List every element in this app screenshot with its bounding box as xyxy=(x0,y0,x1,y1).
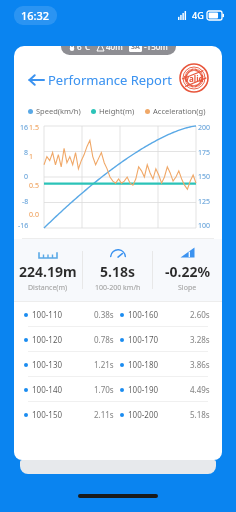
staticText: 100-180 xyxy=(128,359,159,370)
staticText: -0.22% xyxy=(165,262,211,281)
staticText: 4.49s xyxy=(190,384,210,395)
staticText: 100-120 xyxy=(32,334,63,345)
staticText: 200 xyxy=(198,123,211,133)
staticText: Slope xyxy=(178,283,197,293)
staticText: 2.60s xyxy=(190,309,210,320)
staticText: Height(m) xyxy=(99,106,135,116)
staticText: 125 xyxy=(198,197,211,207)
staticText: 1 xyxy=(29,152,34,162)
staticText: 100-190 xyxy=(128,384,159,395)
button[interactable]: Back xyxy=(22,66,50,94)
staticText: 0.0 xyxy=(29,210,39,220)
staticText: 1.70s xyxy=(94,384,114,395)
staticText: 1.21s xyxy=(94,359,114,370)
staticText: 0.78s xyxy=(94,334,114,345)
button[interactable]: 100-150 xyxy=(14,402,222,426)
button[interactable]: 5.18s xyxy=(83,243,152,297)
staticText: 100-110 xyxy=(32,309,63,320)
staticText: 100-170 xyxy=(128,334,159,345)
staticText: 5.18s xyxy=(190,409,210,420)
staticText: 6°C xyxy=(77,46,91,52)
staticText: 5.18s xyxy=(100,262,135,281)
staticText: Speed(km/h) xyxy=(36,106,81,116)
staticText: -8 xyxy=(22,197,29,207)
staticText: 100-160 xyxy=(128,309,159,320)
staticText: 3A xyxy=(131,46,140,52)
staticText: 100-200 xyxy=(128,409,159,420)
staticText: -150m xyxy=(144,46,168,52)
staticText: 150 xyxy=(198,172,211,182)
staticText: Acceleration(g) xyxy=(153,106,206,116)
button[interactable]: 100-140 xyxy=(14,377,222,401)
staticText: 100-150 xyxy=(32,409,63,420)
staticText: 100-130 xyxy=(32,359,63,370)
button[interactable]: 100-110 xyxy=(14,302,222,326)
staticText: 0 xyxy=(24,172,29,182)
staticText: 40m xyxy=(106,46,123,52)
staticText: -16 xyxy=(18,221,29,231)
staticText: 3.86s xyxy=(190,359,210,370)
button[interactable]: 100-130 xyxy=(14,352,222,376)
staticText: Distance(m) xyxy=(28,283,68,293)
staticText: Valid xyxy=(184,73,204,84)
staticText: 2.11s xyxy=(94,409,114,420)
staticText: 224.19m xyxy=(19,262,77,281)
staticText: 0.38s xyxy=(94,309,114,320)
staticText: 100-200 km/h xyxy=(95,283,141,293)
staticText: 3.28s xyxy=(190,334,210,345)
staticText: 100 xyxy=(198,221,211,231)
button[interactable]: 100-120 xyxy=(14,327,222,351)
staticText: 100-140 xyxy=(32,384,63,395)
staticText: 16:32 xyxy=(21,8,50,23)
button[interactable]: 224.19m xyxy=(14,244,82,297)
staticText: Performance Report xyxy=(48,71,173,89)
staticText: 8 xyxy=(24,148,29,158)
button[interactable]: -0.22% xyxy=(153,243,222,297)
staticText: 16 xyxy=(20,123,29,133)
staticText: 175 xyxy=(198,148,211,158)
staticText: 4G xyxy=(192,9,204,21)
staticText: 0.5 xyxy=(29,181,39,191)
staticText: 1.5 xyxy=(29,123,39,133)
